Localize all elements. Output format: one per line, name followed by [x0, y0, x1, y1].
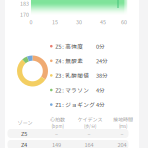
button[interactable]: Z4 : 無酸素: [50, 53, 108, 68]
staticText: ケイデンス: [77, 116, 102, 123]
button[interactable]: Z4: [7, 140, 128, 148]
staticText: Z1 : ジョギング: [55, 100, 95, 109]
staticText: 149: [52, 140, 61, 148]
button[interactable]: Z5: [7, 129, 128, 138]
staticText: 30: [76, 18, 82, 26]
staticText: –: [55, 129, 58, 137]
staticText: 204: [117, 140, 126, 148]
staticText: 接地時間: [113, 116, 133, 123]
staticText: 38分: [96, 71, 108, 79]
staticText: Z4 : 無酸素: [55, 57, 83, 65]
staticText: 24分: [96, 57, 108, 65]
staticText: 60: [121, 18, 127, 26]
staticText: 15: [52, 18, 58, 26]
staticText: Z4: [21, 140, 27, 148]
button[interactable]: Z5 : 高強度: [50, 39, 108, 53]
staticText: –: [87, 129, 90, 137]
staticText: Z3 : 乳酸閾値: [55, 71, 89, 79]
staticText: 4分: [96, 100, 105, 109]
staticText: 心拍数: [50, 116, 65, 123]
staticText: 170: [20, 11, 29, 18]
staticText: ゾーン: [17, 119, 32, 126]
staticText: 183: [20, 0, 29, 7]
staticText: 0: [29, 18, 32, 26]
button[interactable]: Z3 : 乳酸閾値: [50, 68, 108, 83]
staticText: (bpm): [51, 123, 63, 129]
staticText: Z2 : マラソン: [55, 86, 89, 94]
staticText: –: [120, 129, 123, 137]
staticText: Z5 : 高強度: [55, 42, 83, 50]
staticText: (歩/分): [84, 123, 96, 129]
staticText: 0分: [96, 42, 105, 50]
staticText: (ms): [119, 123, 127, 129]
staticText: Z5: [21, 129, 27, 137]
staticText: 45: [100, 18, 106, 26]
button[interactable]: Z2 : マラソン: [50, 83, 108, 97]
staticText: 4分: [96, 86, 105, 94]
staticText: 164: [84, 140, 93, 148]
button[interactable]: Z1 : ジョギング: [50, 97, 108, 112]
